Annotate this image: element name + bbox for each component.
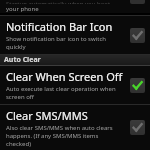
staticText: Also clear SMS/MMS when auto clears happ…: [6, 124, 113, 147]
staticText: Clear When Screen Off: [6, 69, 123, 84]
button[interactable]: Clear When Screen Off: [130, 78, 145, 93]
staticText: your phone: [6, 5, 39, 13]
button[interactable]: Clear SMS/MMS: [0, 105, 150, 150]
staticText: Startup automatically when you boot: [6, 0, 111, 4]
button[interactable]: Clear When Screen Off: [0, 66, 150, 104]
button[interactable]: Startup automatically when you boot: [0, 0, 150, 13]
button[interactable]: Notification Bar Icon: [130, 28, 145, 43]
button[interactable]: Clear SMS/MMS: [130, 120, 145, 135]
staticText: Notification Bar Icon: [6, 19, 113, 34]
button[interactable]: Notification Bar Icon: [0, 16, 150, 54]
staticText: Clear SMS/MMS: [6, 108, 88, 123]
staticText: Auto execute last clear operation when s…: [6, 85, 116, 101]
staticText: Show notification bar icon to switch qui…: [6, 35, 106, 51]
staticText: Auto Clear: [4, 55, 41, 65]
